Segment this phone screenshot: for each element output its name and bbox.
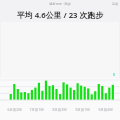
staticText: 健身记录 · 跑步 [49, 2, 71, 6]
staticText: 6月第2周 [7, 107, 22, 112]
staticText: 平均 4.6公里 / 23 次跑步 [17, 10, 103, 21]
button[interactable]: Weekly running distance bar chart [0, 78, 120, 120]
staticText: 8月第2周 [52, 107, 67, 112]
staticText: 7月第1周 [29, 107, 44, 112]
other: Weekly running distance bar chart [0, 78, 120, 104]
staticText: 9月第1周 [75, 107, 90, 112]
staticText: 9月第4周 [98, 107, 113, 112]
button[interactable]: 完成 [112, 2, 118, 6]
button[interactable]: 平均 4.6公里 / 23 次跑步 [0, 8, 120, 22]
